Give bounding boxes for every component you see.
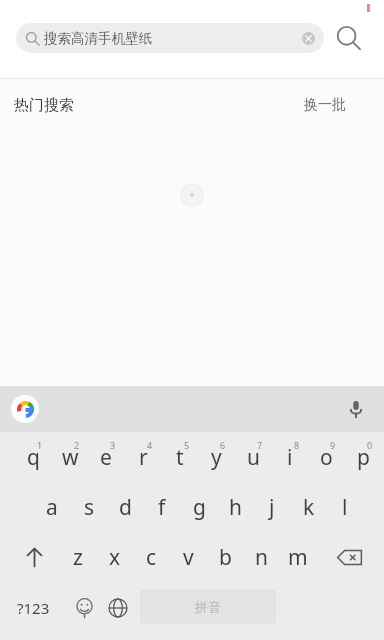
staticText: a [46, 493, 58, 522]
staticText: w [62, 443, 79, 472]
button[interactable]: q [15, 432, 51, 482]
button[interactable]: m [280, 532, 316, 582]
staticText: e [100, 443, 112, 472]
button[interactable]: 换一批 [304, 96, 346, 114]
staticText: ?123 [17, 598, 50, 618]
staticText: 1 [37, 439, 43, 451]
staticText: 9 [330, 439, 336, 451]
button[interactable]: i [272, 432, 308, 482]
staticText: f [158, 493, 166, 522]
button[interactable]: g [181, 482, 217, 532]
staticText: h [229, 493, 242, 522]
button[interactable]: r [125, 432, 161, 482]
button[interactable]: 热门搜索 [14, 96, 74, 115]
button[interactable]: o [308, 432, 344, 482]
staticText: q [27, 443, 40, 472]
staticText: m [288, 543, 308, 572]
staticText: o [320, 443, 333, 472]
staticText: 0 [367, 439, 373, 451]
staticText: s [84, 493, 95, 522]
staticText: y [211, 443, 222, 472]
button[interactable]: Google [11, 395, 39, 423]
button[interactable]: 表情符号 [62, 582, 106, 634]
staticText: u [247, 443, 260, 472]
button[interactable]: v [170, 532, 206, 582]
button[interactable]: k [291, 482, 327, 532]
staticText: l [342, 493, 348, 522]
staticText: b [219, 543, 232, 572]
button[interactable]: d [107, 482, 143, 532]
staticText: i [287, 443, 293, 472]
staticText: 2 [74, 439, 80, 451]
button[interactable]: x [97, 532, 133, 582]
staticText: 6 [220, 439, 226, 451]
button[interactable]: n [243, 532, 279, 582]
button[interactable]: h [217, 482, 253, 532]
button[interactable]: w [52, 432, 88, 482]
button[interactable]: y [198, 432, 234, 482]
button[interactable]: 清除 [300, 30, 317, 47]
button[interactable]: t [162, 432, 198, 482]
button[interactable]: u [235, 432, 271, 482]
button[interactable]: 删除 [325, 532, 373, 582]
staticText: 3 [110, 439, 116, 451]
button[interactable]: 拼音 [140, 590, 276, 624]
staticText: k [303, 493, 315, 522]
button[interactable]: a [34, 482, 70, 532]
staticText: 8 [294, 439, 300, 451]
button[interactable]: f [144, 482, 180, 532]
staticText: p [357, 443, 370, 472]
button[interactable]: z [60, 532, 96, 582]
staticText: g [193, 493, 206, 522]
button[interactable]: b [207, 532, 243, 582]
staticText: j [269, 493, 275, 522]
button[interactable]: 语音输入 [340, 393, 372, 425]
staticText: v [183, 543, 194, 572]
button[interactable]: 搜索 [324, 14, 372, 62]
staticText: t [176, 443, 184, 472]
button[interactable]: s [71, 482, 107, 532]
staticText: 4 [147, 439, 153, 451]
button[interactable]: c [133, 532, 169, 582]
staticText: c [146, 543, 157, 572]
button[interactable]: l [327, 482, 363, 532]
button[interactable]: Shift [11, 532, 57, 582]
button[interactable]: 搜索高清手机壁纸 [16, 23, 324, 53]
button[interactable]: p [345, 432, 381, 482]
staticText: 7 [257, 439, 263, 451]
staticText: z [73, 543, 83, 572]
button[interactable]: e [88, 432, 124, 482]
staticText: 搜索高清手机壁纸 [44, 30, 300, 47]
button[interactable]: ?123 [4, 582, 62, 634]
button[interactable]: 切换语言 [94, 582, 142, 634]
button[interactable]: j [254, 482, 290, 532]
staticText: x [109, 543, 121, 572]
staticText: d [119, 493, 132, 522]
staticText: 5 [184, 439, 190, 451]
staticText: n [255, 543, 268, 572]
staticText: 拼音 [195, 599, 221, 615]
staticText: r [139, 443, 148, 472]
